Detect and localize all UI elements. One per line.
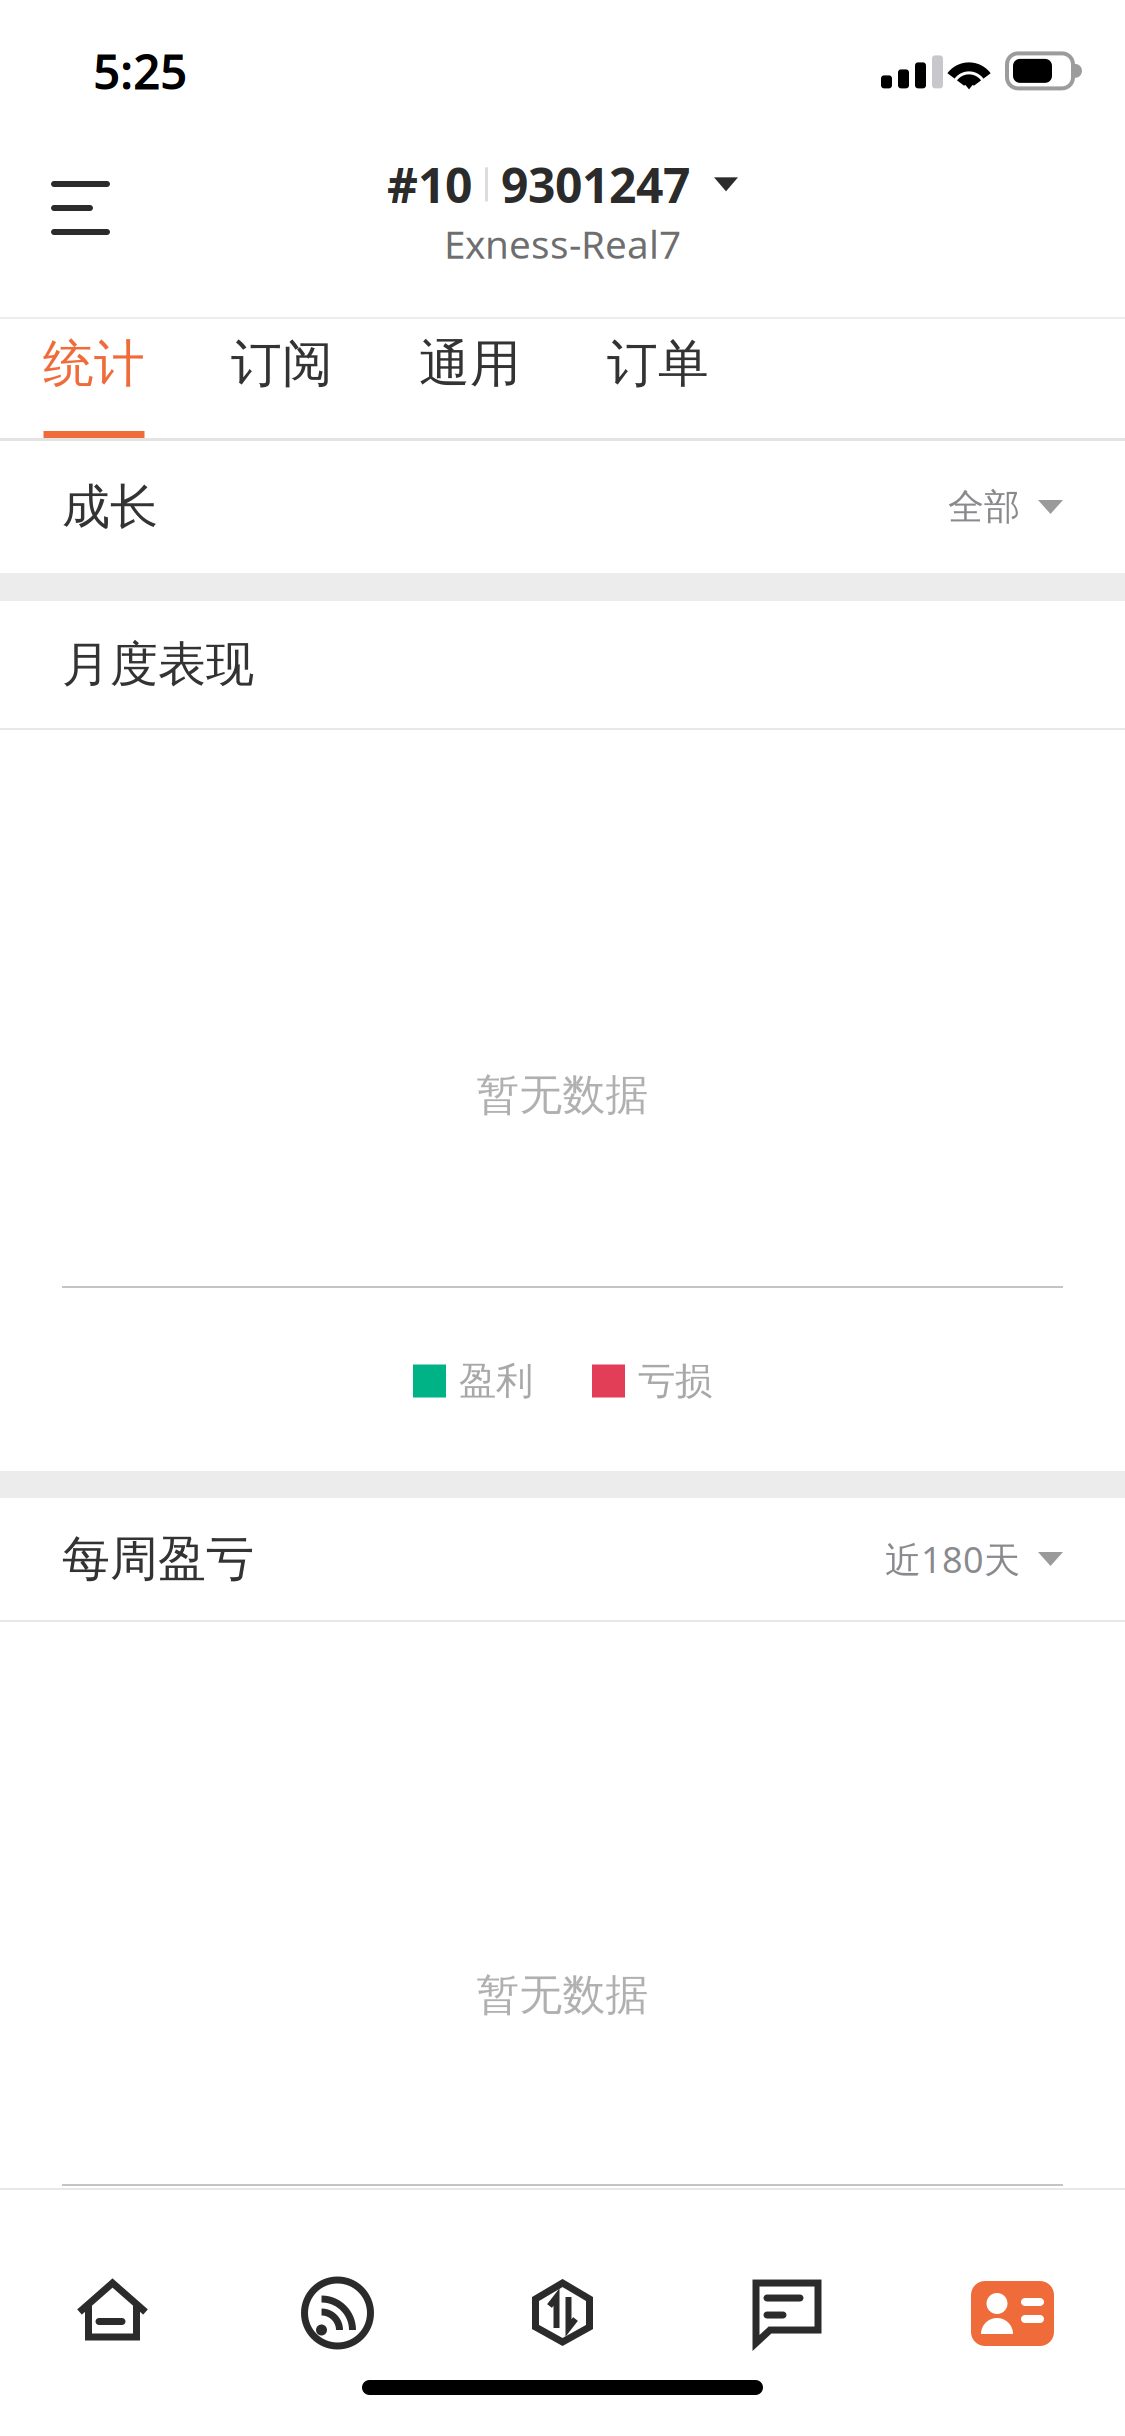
button[interactable]: Messages bbox=[675, 2190, 900, 2346]
button[interactable]: 全部 bbox=[948, 465, 1063, 549]
button[interactable]: #10 bbox=[367, 142, 758, 304]
button[interactable]: Home bbox=[0, 2190, 225, 2346]
staticText: 统计 bbox=[43, 333, 145, 395]
button[interactable]: Signals bbox=[225, 2190, 450, 2346]
button[interactable]: 近180天 bbox=[885, 1515, 1063, 1603]
staticText: Exness-Real7 bbox=[444, 218, 681, 269]
staticText: 每周盈亏 bbox=[62, 1529, 254, 1588]
staticText: 5:25 bbox=[93, 39, 187, 103]
button[interactable]: Trade bbox=[450, 2190, 675, 2346]
button[interactable]: Menu bbox=[51, 148, 161, 268]
staticText: 暂无数据 bbox=[476, 1069, 648, 1121]
staticText: 近180天 bbox=[885, 1535, 1020, 1583]
staticText: 亏损 bbox=[638, 1358, 712, 1404]
staticText: 全部 bbox=[948, 485, 1020, 529]
button[interactable]: 统计 bbox=[0, 319, 188, 438]
staticText: 暂无数据 bbox=[476, 1969, 648, 2021]
staticText: 月度表现 bbox=[62, 635, 254, 694]
staticText: 成长 bbox=[62, 477, 158, 536]
staticText: 盈利 bbox=[459, 1358, 533, 1404]
staticText: 通用 bbox=[419, 333, 521, 395]
button[interactable]: 订单 bbox=[564, 319, 752, 438]
button[interactable]: Profile bbox=[900, 2190, 1125, 2346]
staticText: 9301247 bbox=[501, 152, 690, 216]
button[interactable]: 订阅 bbox=[188, 319, 376, 438]
staticText: 订单 bbox=[607, 333, 709, 395]
button[interactable]: 通用 bbox=[376, 319, 564, 438]
staticText: 订阅 bbox=[231, 333, 333, 395]
staticText: #10 bbox=[387, 152, 472, 216]
